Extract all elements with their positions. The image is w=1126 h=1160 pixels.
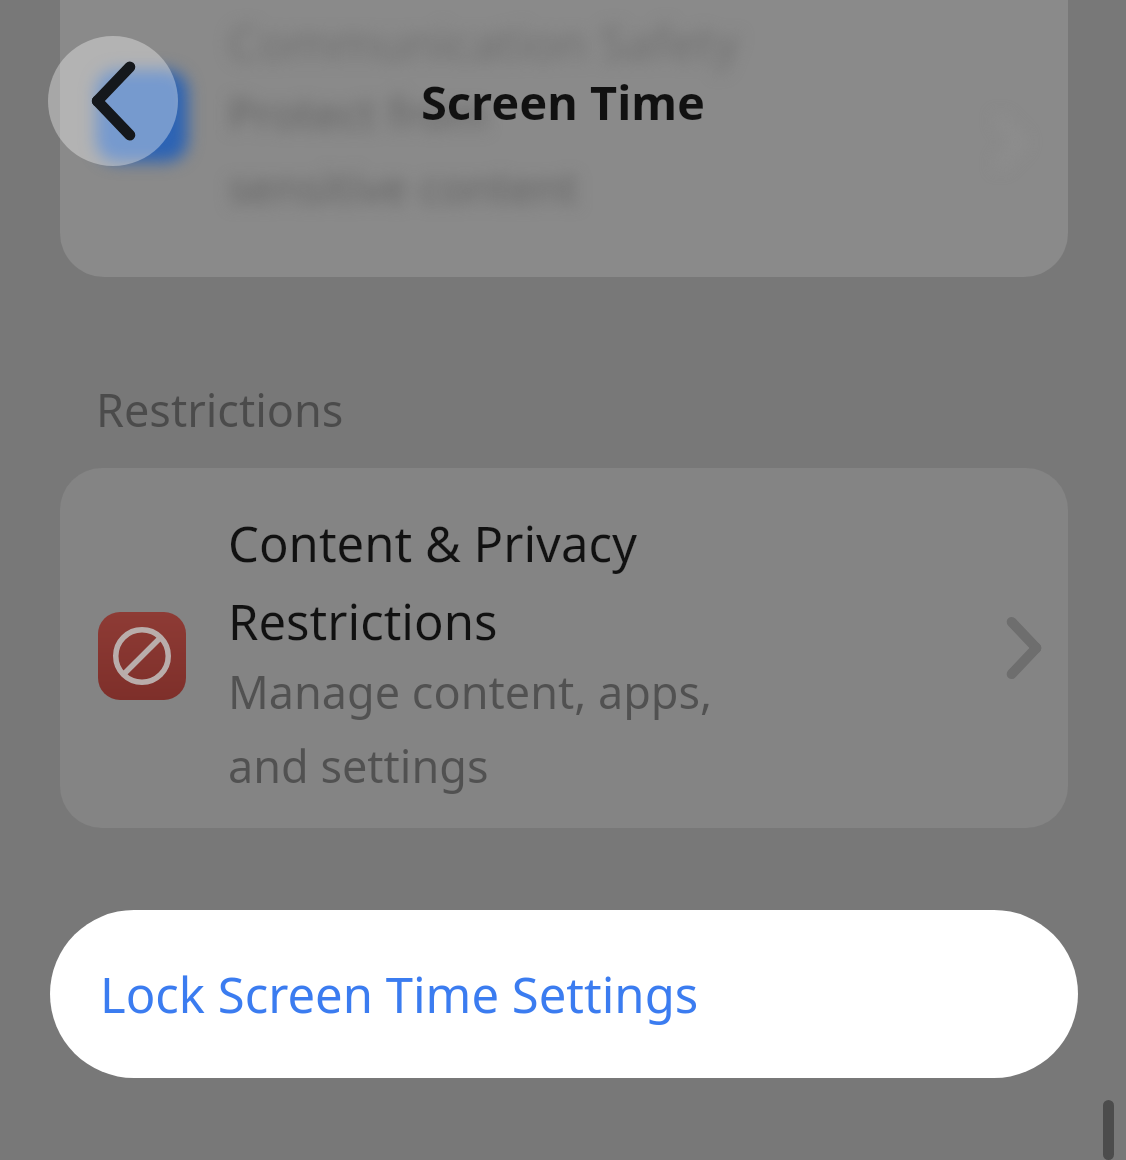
button[interactable]: Lock Screen Time Settings (50, 910, 1078, 1078)
staticText: sensitive content (228, 157, 579, 217)
staticText: Screen Time (0, 70, 1126, 134)
staticText: Protect from (228, 83, 488, 143)
staticText: Manage content, apps, and settings (228, 661, 713, 796)
button[interactable]: Content & Privacy Restrictions (60, 468, 1068, 828)
staticText: Lock Screen Time Settings (100, 961, 699, 1028)
staticText: Content & Privacy Restrictions (228, 510, 637, 655)
button[interactable]: Back (48, 36, 178, 166)
staticText: Restrictions (96, 379, 344, 440)
